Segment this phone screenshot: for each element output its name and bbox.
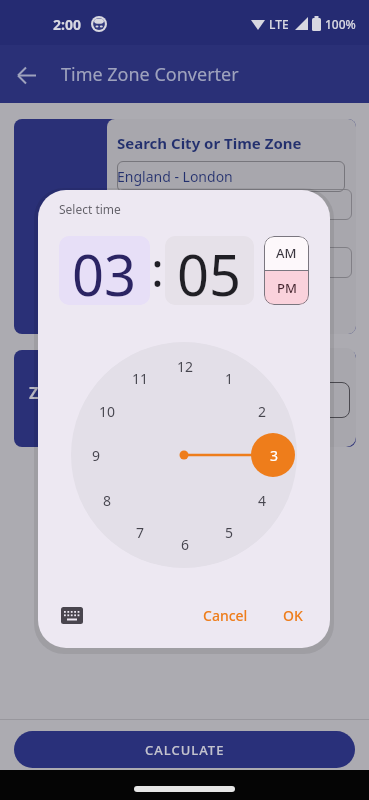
button[interactable]: England - London — [117, 161, 345, 192]
staticText: 100% — [325, 16, 356, 32]
staticText: Z — [29, 382, 39, 404]
button[interactable]: Cancel — [195, 597, 255, 633]
staticText: 2 — [258, 402, 267, 421]
staticText: England - London — [117, 167, 233, 186]
staticText: OK — [283, 606, 303, 625]
staticText: 3 — [270, 446, 279, 465]
button[interactable]: CALCULATE — [14, 731, 355, 768]
staticText: 05 — [177, 236, 242, 305]
button[interactable]: AM — [264, 236, 309, 270]
staticText: AM — [276, 244, 297, 262]
staticText: Time Zone Converter — [61, 62, 239, 87]
staticText: 5 — [225, 523, 234, 542]
staticText: Cancel — [203, 606, 248, 625]
staticText: 8 — [103, 491, 112, 510]
staticText: 9 — [92, 446, 101, 465]
staticText: Select time — [59, 201, 121, 217]
staticText: 11 — [132, 369, 149, 388]
staticText: 7 — [136, 523, 145, 542]
button[interactable] — [52, 595, 92, 635]
staticText: 4 — [258, 491, 267, 510]
staticText: 03 — [72, 236, 137, 305]
staticText: 10 — [99, 402, 116, 421]
staticText: 1 — [225, 369, 234, 388]
staticText: : — [151, 236, 164, 301]
button[interactable]: 05 — [165, 236, 254, 305]
staticText: LTE — [269, 16, 289, 32]
staticText: 12 — [177, 357, 194, 376]
staticText: PM — [277, 279, 297, 297]
staticText: CALCULATE — [145, 741, 225, 759]
button[interactable]: 03 — [59, 236, 150, 305]
staticText: Search City or Time Zone — [117, 133, 302, 153]
button[interactable]: PM — [264, 271, 309, 305]
staticText: 6 — [181, 535, 190, 554]
staticText: 2:00 — [53, 15, 81, 34]
button[interactable] — [9, 57, 45, 93]
button[interactable]: OK — [272, 597, 314, 633]
